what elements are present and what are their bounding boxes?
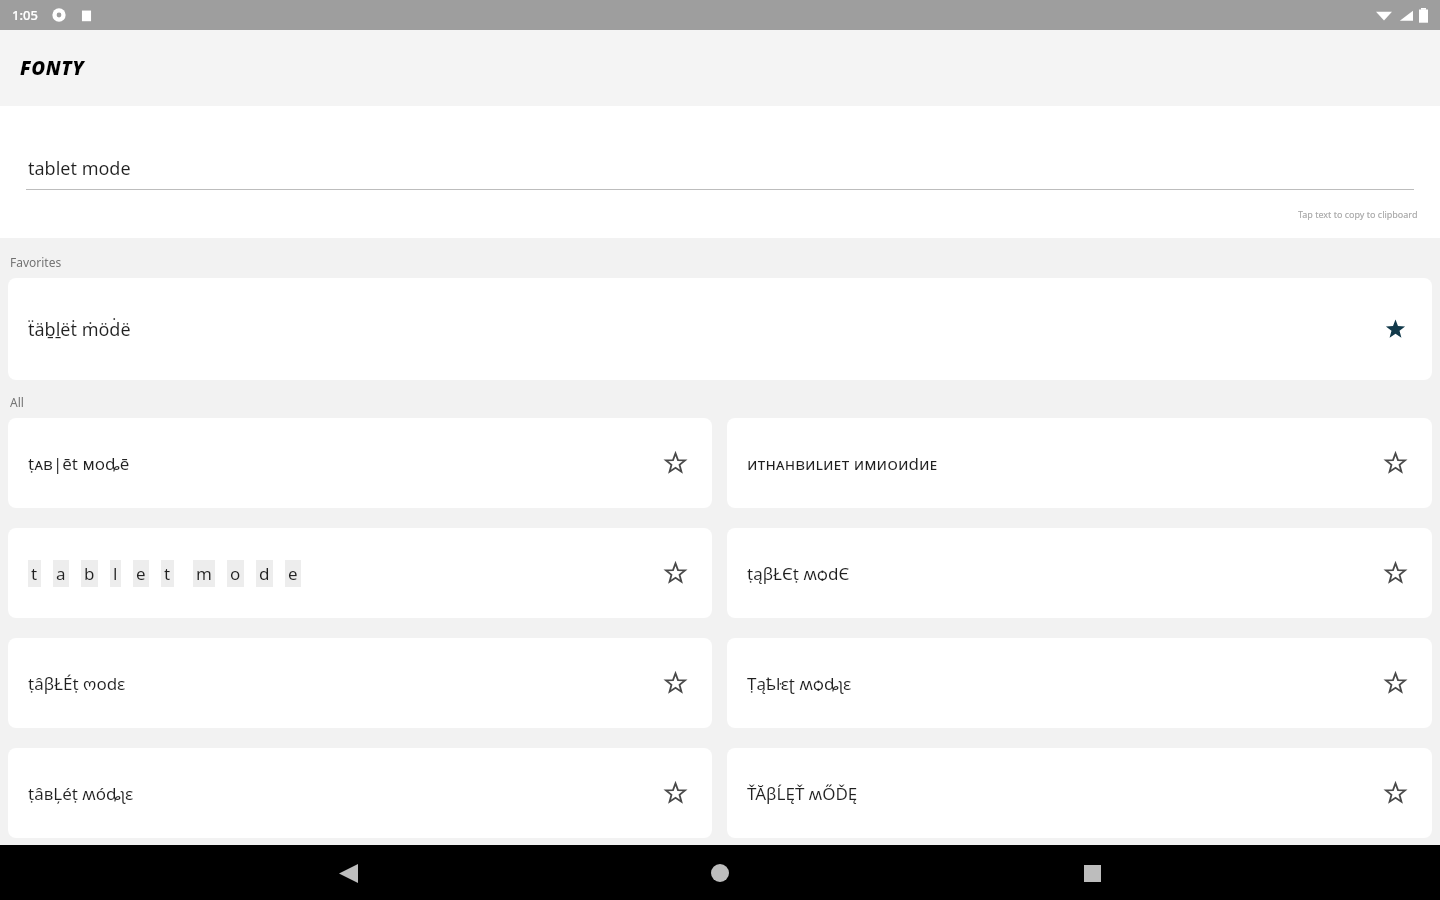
button[interactable]: Add to favorites (658, 446, 692, 480)
staticText: b (84, 562, 95, 585)
button[interactable]: Add to favorites (1378, 776, 1412, 810)
staticText: m (196, 562, 212, 585)
staticText: tablet mode (28, 156, 131, 181)
button[interactable]: Add to favorites (658, 666, 692, 700)
button[interactable]: Back (324, 849, 372, 897)
staticText: ŤĂβĹĘŤ ʍŐĎĘ (747, 782, 858, 805)
staticText: t (164, 562, 171, 585)
button[interactable]: ṭąβŁЄṭ ʍѻdЄ (727, 528, 1432, 618)
staticText: ṭąβŁЄṭ ʍѻdЄ (747, 562, 850, 585)
button[interactable]: ṭᴀʙ|ēt ᴍoȡē (8, 418, 712, 508)
staticText: ṭᴀʙ|ēt ᴍoȡē (28, 452, 130, 475)
button[interactable]: Ṭąҍŀɛʈ ʍѻȡʅɛ (727, 638, 1432, 728)
button[interactable]: ᴎᴛнᴀнʙᴎʟиᴇᴛ ᴎᴍиᴏиdиᴇ (727, 418, 1432, 508)
button[interactable]: Home (696, 849, 744, 897)
staticText: e (288, 562, 298, 585)
button[interactable]: ŤĂβĹĘŤ ʍŐĎĘ (727, 748, 1432, 838)
staticText: Favorites (10, 254, 62, 270)
staticText: 1:05 (12, 6, 38, 24)
staticText: ẗäḇḻëṫ ṁöḋë (28, 317, 131, 342)
staticText: Tap text to copy to clipboard (1298, 208, 1418, 220)
staticText: Ṭąҍŀɛʈ ʍѻȡʅɛ (747, 672, 852, 695)
button[interactable]: t (8, 528, 712, 618)
button[interactable]: Add to favorites (1378, 556, 1412, 590)
staticText: e (136, 562, 146, 585)
button[interactable]: Recent apps (1068, 849, 1116, 897)
button[interactable]: Add to favorites (658, 556, 692, 590)
button[interactable]: Add to favorites (1378, 446, 1412, 480)
staticText: d (259, 562, 270, 585)
staticText: a (56, 562, 66, 585)
button[interactable]: Add to favorites (1378, 666, 1412, 700)
button[interactable]: ṭȃβŁÉṭ ოodɛ (8, 638, 712, 728)
staticText: t (31, 562, 38, 585)
button[interactable]: Add to favorites (658, 776, 692, 810)
button[interactable]: ẗäḇḻëṫ ṁöḋë (8, 278, 1432, 380)
staticText: All (10, 394, 24, 410)
staticText: o (230, 562, 241, 585)
staticText: l (113, 562, 118, 585)
staticText: ṭȃвĻéṭ ʍóȡʅɛ (28, 782, 134, 805)
staticText: FONTY (20, 55, 85, 81)
staticText: ᴎᴛнᴀнʙᴎʟиᴇᴛ ᴎᴍиᴏиdиᴇ (747, 452, 938, 475)
button[interactable]: ṭȃвĻéṭ ʍóȡʅɛ (8, 748, 712, 838)
staticText: ṭȃβŁÉṭ ოodɛ (28, 672, 126, 695)
button[interactable]: Remove from favorites (1378, 312, 1412, 346)
